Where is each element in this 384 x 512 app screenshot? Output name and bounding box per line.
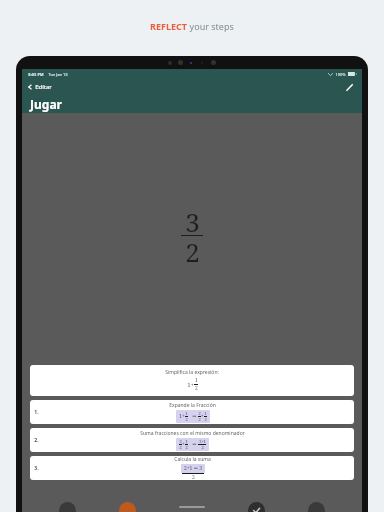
button[interactable]: Fraction tool bbox=[119, 502, 136, 512]
staticText: 2 bbox=[185, 445, 188, 450]
staticText: ⇒ bbox=[188, 413, 198, 420]
staticText: ⇒ bbox=[188, 441, 198, 448]
staticText: Jugar bbox=[30, 96, 62, 112]
staticText: 2. bbox=[34, 437, 39, 444]
staticText: 2 bbox=[185, 417, 188, 422]
staticText: Tue Jan 13 bbox=[48, 72, 68, 77]
staticText: Expande la Fracción bbox=[169, 402, 216, 409]
staticText: 2+1 ⇒ 3 bbox=[184, 465, 202, 472]
staticText: 1 bbox=[195, 377, 198, 384]
staticText: + bbox=[182, 441, 185, 448]
button[interactable]: 2. bbox=[30, 428, 354, 452]
staticText: REFLECT bbox=[150, 20, 187, 32]
staticText: 1 bbox=[204, 411, 207, 416]
staticText: 2+1 bbox=[199, 439, 206, 444]
staticText: 8:03 PM bbox=[28, 72, 44, 77]
staticText: 2 bbox=[198, 411, 201, 416]
staticText: 2 bbox=[201, 445, 204, 450]
staticText: 2 bbox=[204, 417, 207, 422]
button[interactable]: More options bbox=[308, 502, 325, 512]
button[interactable]: Editar bbox=[27, 83, 52, 91]
button[interactable]: Simplifica la expresión: bbox=[30, 365, 354, 396]
staticText: 2 bbox=[179, 445, 182, 450]
staticText: 1. bbox=[34, 409, 39, 416]
button[interactable]: 3. bbox=[30, 456, 354, 480]
staticText: 2 bbox=[185, 234, 200, 269]
button[interactable]: Edit bbox=[342, 80, 356, 94]
staticText: 1+ bbox=[179, 413, 185, 420]
staticText: 2 bbox=[198, 417, 201, 422]
staticText: 1 bbox=[185, 439, 188, 444]
staticText: your steps bbox=[187, 20, 234, 32]
staticText: 2 bbox=[195, 385, 198, 392]
staticText: 1+ bbox=[187, 381, 194, 389]
staticText: Calcula la suma bbox=[174, 456, 211, 463]
button[interactable]: 1. bbox=[30, 400, 354, 424]
staticText: Editar bbox=[35, 83, 52, 91]
staticText: 2 bbox=[192, 474, 195, 480]
staticText: Suma fracciones con el mismo denominador bbox=[140, 430, 245, 437]
button[interactable]: Undo bbox=[59, 502, 76, 512]
button[interactable]: Confirm bbox=[248, 502, 265, 512]
staticText: + bbox=[201, 413, 204, 420]
staticText: 100% bbox=[335, 72, 346, 77]
staticText: 3 bbox=[185, 204, 200, 239]
staticText: 3. bbox=[34, 465, 39, 472]
staticText: 2 bbox=[179, 439, 182, 444]
staticText: 1 bbox=[185, 411, 188, 416]
staticText: Simplifica la expresión: bbox=[165, 369, 219, 376]
